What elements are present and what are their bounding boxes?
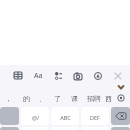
staticText: 的 <box>23 94 30 103</box>
button[interactable]: ABC key <box>51 107 79 125</box>
button[interactable]: Punctuation key <box>21 107 49 125</box>
button[interactable]: More candidates <box>113 81 129 91</box>
button[interactable]: Shift <box>0 127 19 130</box>
button[interactable]: 了 <box>51 86 63 106</box>
button[interactable]: Clipboard <box>48 65 68 86</box>
button[interactable]: 招聘 <box>84 86 103 106</box>
button[interactable]: Keyboard layout <box>8 65 28 86</box>
button[interactable]: ， <box>2 86 14 106</box>
button[interactable]: Camera <box>68 65 88 86</box>
button[interactable]: Backspace <box>111 107 130 125</box>
staticText: @/ <box>32 114 39 121</box>
staticText: DEF <box>90 114 100 121</box>
button[interactable]: 的 <box>20 86 32 106</box>
staticText: ， <box>5 94 12 103</box>
button[interactable]: Close keyboard <box>108 65 128 86</box>
button[interactable]: Aa <box>28 65 48 86</box>
staticText: 、 <box>39 94 46 103</box>
button[interactable]: Symbols keyboard <box>0 107 19 125</box>
staticText: 招聘 <box>87 94 101 103</box>
button[interactable]: 课 <box>68 86 80 106</box>
button[interactable]: 、 <box>36 86 48 106</box>
button[interactable]: Voice input <box>88 65 108 86</box>
button[interactable]: 西 <box>102 86 114 106</box>
staticText: 课 <box>71 94 78 103</box>
button[interactable]: Clear <box>111 127 130 130</box>
staticText: Aa <box>34 71 43 81</box>
button[interactable]: Keyboard settings <box>113 92 129 104</box>
staticText: 西 <box>105 94 112 103</box>
staticText: ABC <box>60 114 71 121</box>
button[interactable]: DEF key <box>81 107 109 125</box>
staticText: 了 <box>54 94 61 103</box>
